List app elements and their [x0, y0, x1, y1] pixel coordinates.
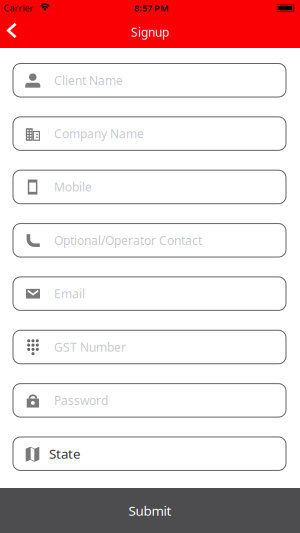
button[interactable]: Password — [13, 384, 286, 417]
button[interactable]: Submit — [0, 488, 300, 533]
staticText: Email — [54, 286, 85, 302]
button[interactable]: Email — [13, 277, 286, 310]
staticText: Password — [54, 392, 108, 408]
staticText: Submit — [128, 502, 171, 519]
button[interactable]: GST Number — [13, 330, 286, 364]
button[interactable]: State — [13, 437, 286, 470]
staticText: State — [49, 445, 81, 462]
staticText: Carrier — [3, 2, 33, 14]
staticText: Company Name — [54, 126, 144, 141]
staticText: 8:57 PM — [134, 2, 169, 14]
staticText: Mobile — [54, 179, 92, 195]
button[interactable]: Company Name — [13, 117, 286, 150]
button[interactable]: Mobile — [13, 170, 286, 204]
button[interactable]: Optional/Operator Contact — [13, 224, 286, 257]
staticText: Signup — [131, 24, 169, 40]
staticText: Client Name — [54, 72, 123, 88]
button[interactable] — [0, 16, 26, 48]
staticText: Optional/Operator Contact — [54, 232, 202, 248]
staticText: GST Number — [54, 339, 126, 355]
button[interactable]: Client Name — [13, 63, 286, 97]
